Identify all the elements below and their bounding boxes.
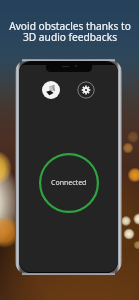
staticText: Connected <box>51 178 87 188</box>
staticText: Avoid obstacles thanks to 3D audio feedb… <box>9 19 131 44</box>
button[interactable]: Settings <box>77 81 95 99</box>
button[interactable]: 3D scan <box>42 81 60 99</box>
